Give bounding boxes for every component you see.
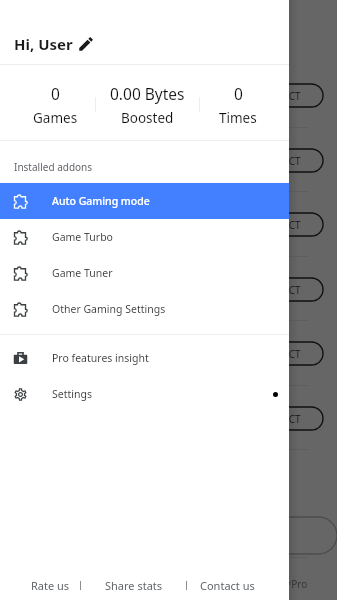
button[interactable]: Other Gaming Settings — [0, 291, 289, 327]
button[interactable]: Connect — [243, 407, 323, 430]
staticText: Rate us — [31, 578, 70, 592]
button[interactable]: Hi, User — [0, 26, 111, 62]
staticText: Other Gaming Settings — [52, 302, 166, 316]
button[interactable]: Rate us — [25, 575, 76, 595]
button[interactable]: Pro features insight — [0, 340, 289, 376]
staticText: Hi, User — [14, 34, 73, 54]
button[interactable]: Connect — [243, 84, 323, 107]
staticText: CONNECT — [254, 347, 301, 361]
button[interactable]: 0.00 Bytes — [96, 83, 199, 127]
staticText: Times — [219, 109, 257, 127]
staticText: 0 — [51, 83, 60, 104]
button[interactable]: Connect — [243, 149, 323, 172]
staticText: Installed addons — [14, 160, 93, 174]
button[interactable]: Connect — [243, 342, 323, 365]
staticText: Games — [33, 109, 78, 127]
button[interactable]: 0 — [16, 83, 95, 127]
button[interactable]: Share stats — [99, 575, 169, 595]
button[interactable]: Contact us — [194, 575, 261, 595]
staticText: Contact us — [200, 578, 255, 592]
staticText: 0 — [234, 83, 243, 104]
staticText: Share stats — [105, 578, 163, 592]
staticText: CONNECT — [254, 283, 301, 297]
staticText: Boosted — [121, 109, 174, 127]
button[interactable]: Connect — [243, 213, 323, 236]
button[interactable]: 0 — [200, 83, 276, 127]
button[interactable]: Settings — [0, 376, 289, 412]
staticText: CONNECT — [254, 412, 301, 426]
staticText: Pro features insight — [52, 351, 149, 365]
button[interactable]: Connect — [243, 278, 323, 301]
button[interactable]: Auto Gaming mode — [0, 183, 289, 219]
staticText: Settings *Pro — [245, 577, 308, 591]
staticText: Settings — [52, 387, 92, 401]
staticText: CONNECT — [254, 154, 301, 168]
staticText: 0.00 Bytes — [110, 83, 185, 104]
staticText: Auto Gaming mode — [52, 194, 150, 208]
button[interactable]: Game Turbo — [0, 219, 289, 255]
button[interactable]: Game Tuner — [0, 255, 289, 291]
staticText: Game Turbo — [52, 230, 113, 244]
staticText: Game Tuner — [52, 266, 113, 280]
staticText: CONNECT — [254, 218, 301, 232]
staticText: CONNECT — [254, 89, 301, 103]
